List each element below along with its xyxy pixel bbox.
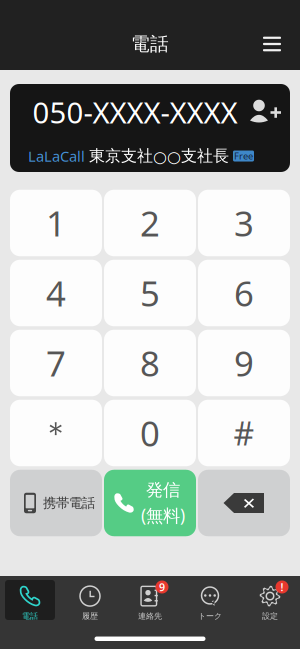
button[interactable]: トーク	[180, 580, 240, 620]
staticText: 東京支社○○支社長	[89, 146, 229, 166]
staticText: 9	[234, 340, 254, 386]
button[interactable]: 9	[198, 330, 290, 396]
button[interactable]: 設定	[240, 580, 300, 620]
staticText: 4	[46, 270, 66, 316]
button[interactable]: 2	[104, 190, 196, 256]
staticText: 電話	[22, 611, 38, 621]
staticText: ＊	[40, 414, 71, 452]
staticText: 1	[46, 200, 66, 246]
button[interactable]: 0	[104, 400, 196, 466]
button[interactable]: Menu	[250, 24, 294, 64]
staticText: 5	[140, 270, 160, 316]
button[interactable]: 連絡先	[120, 580, 180, 620]
staticText: Free	[234, 150, 253, 162]
staticText: (無料)	[141, 504, 185, 527]
staticText: 履歴	[82, 611, 98, 621]
button[interactable]: 6	[198, 260, 290, 326]
staticText: 050-XXXX-XXXX	[32, 92, 237, 131]
staticText: 8	[140, 340, 160, 386]
button[interactable]: #	[198, 400, 290, 466]
staticText: トーク	[198, 611, 222, 621]
staticText: 連絡先	[138, 611, 162, 621]
staticText: 設定	[262, 611, 278, 621]
button[interactable]: 携帯電話	[10, 470, 102, 536]
button[interactable]: 8	[104, 330, 196, 396]
staticText: 2	[140, 200, 160, 246]
button[interactable]: 7	[10, 330, 102, 396]
button[interactable]: 3	[198, 190, 290, 256]
staticText: 7	[46, 340, 66, 386]
staticText: 3	[234, 200, 254, 246]
button[interactable]: 電話	[0, 580, 60, 620]
staticText: !	[280, 580, 283, 594]
button[interactable]: 発信	[104, 470, 196, 536]
staticText: 電話	[131, 32, 169, 55]
staticText: 6	[234, 270, 254, 316]
staticText: 9	[159, 580, 165, 594]
staticText: #	[233, 412, 254, 454]
staticText: LaLaCall	[28, 146, 85, 166]
staticText: 携帯電話	[43, 495, 95, 511]
button[interactable]: Delete	[198, 470, 290, 536]
button[interactable]: 5	[104, 260, 196, 326]
staticText: 発信	[146, 479, 180, 501]
staticText: 0	[140, 410, 160, 456]
button[interactable]: 履歴	[60, 580, 120, 620]
button[interactable]: 1	[10, 190, 102, 256]
button[interactable]: 4	[10, 260, 102, 326]
button[interactable]: Add to contacts	[243, 87, 287, 137]
button[interactable]: ＊	[10, 400, 102, 466]
